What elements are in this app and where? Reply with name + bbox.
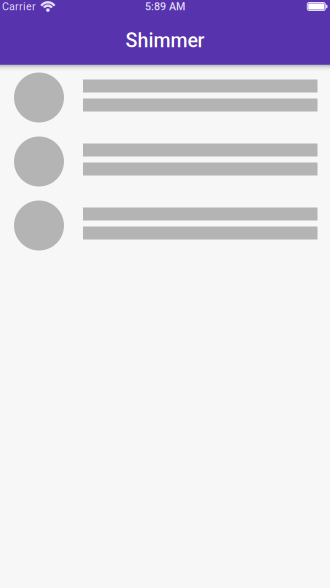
staticText: Shimmer xyxy=(125,29,204,52)
button[interactable]: Loading item 3 xyxy=(14,200,317,250)
staticText: 5:89 AM xyxy=(145,0,185,13)
button[interactable]: Loading item 2 xyxy=(14,136,317,186)
staticText: Carrier xyxy=(2,0,36,13)
button[interactable]: Loading item 1 xyxy=(14,72,317,122)
